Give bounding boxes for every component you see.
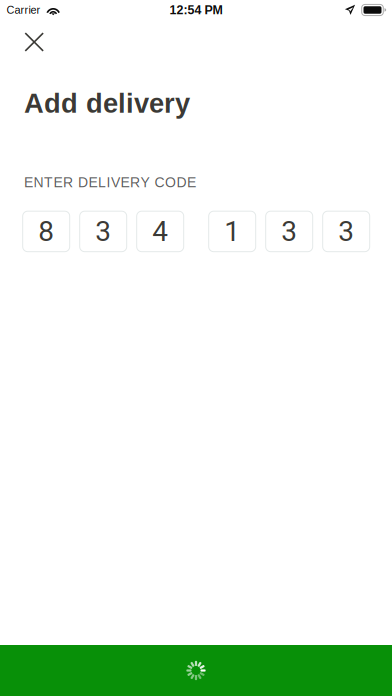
staticText: 1	[224, 215, 240, 248]
button[interactable]: Close	[0, 20, 69, 64]
staticText: 3	[338, 215, 354, 248]
staticText: ENTER DELIVERY CODE	[24, 174, 196, 190]
staticText: Carrier	[6, 4, 40, 16]
staticText: Add delivery	[24, 88, 190, 118]
staticText: 8	[38, 215, 54, 248]
staticText: 12:54 PM	[169, 3, 222, 17]
button[interactable]: Submitting delivery code	[0, 645, 392, 696]
staticText: 4	[152, 215, 168, 248]
staticText: 3	[281, 215, 297, 248]
staticText: 3	[95, 215, 111, 248]
